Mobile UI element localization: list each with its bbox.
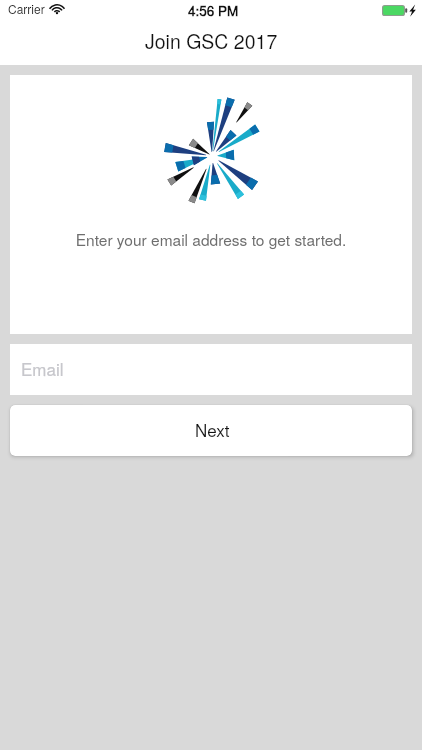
other: Charging	[409, 4, 416, 17]
other: Battery full	[382, 5, 407, 16]
button[interactable]: Next	[10, 405, 412, 456]
button[interactable]: Email	[10, 344, 412, 395]
staticText: Carrier	[8, 0, 45, 17]
staticText: Email	[21, 356, 64, 380]
staticText: Next	[195, 417, 230, 441]
staticText: 4:56 PM	[188, 1, 239, 20]
other: GSC 2017 logo	[152, 96, 272, 216]
other: Wi-Fi signal	[50, 3, 64, 14]
staticText: Join GSC 2017	[145, 27, 278, 55]
staticText: Enter your email address to get started.	[10, 228, 412, 250]
